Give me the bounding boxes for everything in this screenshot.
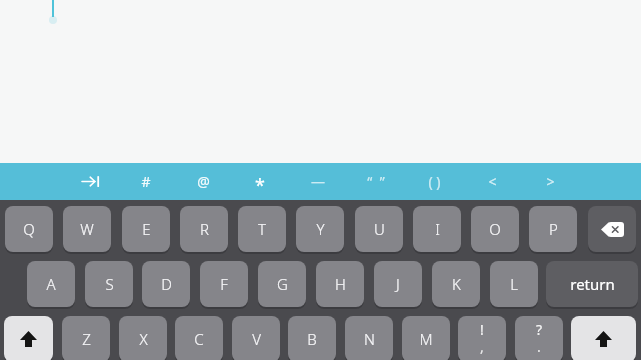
staticText: Q [23, 219, 35, 239]
staticText: C [194, 329, 204, 349]
staticText: ! [480, 320, 484, 339]
staticText: N [364, 329, 375, 349]
staticText: O [489, 219, 501, 239]
staticText: < [488, 172, 497, 191]
staticText: Y [316, 219, 325, 239]
staticText: H [335, 274, 346, 294]
staticText: V [252, 329, 261, 349]
staticText: , [480, 337, 484, 356]
staticText: B [307, 329, 317, 349]
staticText: “ ” [367, 172, 385, 191]
staticText: > [546, 172, 555, 191]
staticText: @ [197, 172, 210, 191]
staticText: I [435, 219, 440, 239]
staticText: return [570, 274, 615, 294]
staticText: W [80, 219, 94, 239]
staticText: * [255, 173, 265, 198]
staticText: G [277, 274, 288, 294]
staticText: ? [536, 320, 543, 339]
staticText: A [46, 274, 56, 294]
staticText: . [537, 337, 541, 356]
staticText: S [105, 274, 114, 294]
staticText: K [452, 274, 461, 294]
staticText: — [311, 172, 325, 191]
staticText: P [549, 219, 558, 239]
staticText: R [200, 219, 209, 239]
staticText: T [258, 219, 266, 239]
staticText: ( ) [428, 172, 441, 191]
staticText: E [142, 219, 151, 239]
staticText: F [220, 274, 228, 294]
staticText: M [419, 329, 433, 349]
staticText: D [161, 274, 172, 294]
staticText: U [374, 219, 385, 239]
staticText: # [141, 172, 151, 191]
staticText: L [510, 274, 518, 294]
staticText: X [139, 329, 148, 349]
staticText: J [396, 274, 400, 294]
staticText: Z [82, 329, 91, 349]
